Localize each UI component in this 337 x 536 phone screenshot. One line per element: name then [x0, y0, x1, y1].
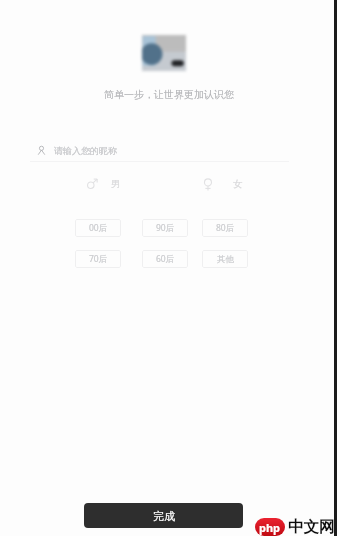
button[interactable]: Female — [202, 175, 243, 193]
button[interactable]: Male — [86, 175, 121, 193]
staticText: 请输入您的昵称 — [54, 145, 117, 156]
staticText: 中文网 — [288, 517, 335, 536]
staticText: 00后 — [89, 222, 108, 234]
staticText: 其他 — [217, 254, 234, 265]
staticText: 简单一步，让世界更加认识您 — [104, 88, 234, 101]
button[interactable]: 完成 — [84, 503, 243, 528]
other: Male — [86, 178, 98, 190]
button[interactable]: 90后 — [142, 219, 188, 237]
button[interactable]: 00后 — [75, 219, 121, 237]
button[interactable]: 请输入您的昵称 — [36, 140, 289, 160]
staticText: 60后 — [156, 253, 175, 265]
button[interactable]: 80后 — [202, 219, 248, 237]
other: Female — [202, 178, 215, 191]
staticText: 80后 — [216, 222, 235, 234]
staticText: 完成 — [153, 509, 175, 523]
button[interactable]: 其他 — [202, 250, 248, 268]
staticText: 70后 — [89, 253, 108, 265]
staticText: php — [259, 520, 281, 535]
button[interactable]: 60后 — [142, 250, 188, 268]
button[interactable]: 70后 — [75, 250, 121, 268]
staticText: 男 — [111, 178, 121, 190]
staticText: 女 — [233, 178, 243, 190]
staticText: 90后 — [156, 222, 175, 234]
